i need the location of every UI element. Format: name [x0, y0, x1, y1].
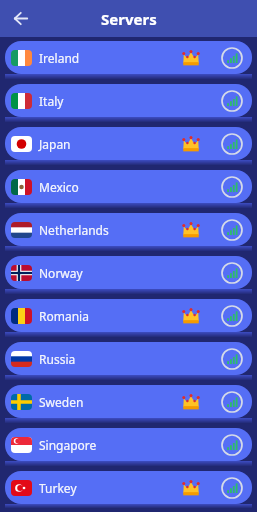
button[interactable]: Ireland	[5, 41, 252, 74]
staticText: Italy	[39, 93, 64, 109]
staticText: Russia	[39, 351, 76, 367]
staticText: Servers	[101, 9, 157, 29]
staticText: Romania	[39, 308, 89, 324]
staticText: Mexico	[39, 179, 79, 195]
button[interactable]	[221, 47, 243, 69]
staticText: Turkey	[39, 480, 77, 496]
button[interactable]	[221, 219, 243, 241]
button[interactable]: Singapore	[5, 428, 252, 461]
button[interactable]	[221, 477, 243, 499]
button[interactable]: Romania	[5, 299, 252, 332]
button[interactable]: Turkey	[5, 471, 252, 504]
staticText: Ireland	[39, 50, 80, 66]
button[interactable]	[13, 11, 28, 26]
button[interactable]: Russia	[5, 342, 252, 375]
staticText: Norway	[39, 265, 83, 281]
button[interactable]	[221, 348, 243, 370]
staticText: Sweden	[39, 394, 84, 410]
button[interactable]	[221, 262, 243, 284]
button[interactable]: Norway	[5, 256, 252, 289]
staticText: Singapore	[39, 437, 97, 453]
button[interactable]: Japan	[5, 127, 252, 160]
button[interactable]: Sweden	[5, 385, 252, 418]
staticText: Netherlands	[39, 222, 109, 238]
button[interactable]	[221, 391, 243, 413]
button[interactable]	[221, 434, 243, 456]
button[interactable]	[221, 176, 243, 198]
button[interactable]: Mexico	[5, 170, 252, 203]
staticText: Japan	[39, 136, 71, 152]
button[interactable]	[221, 90, 243, 112]
button[interactable]	[221, 305, 243, 327]
button[interactable]	[221, 133, 243, 155]
button[interactable]: Netherlands	[5, 213, 252, 246]
button[interactable]: Italy	[5, 84, 252, 117]
